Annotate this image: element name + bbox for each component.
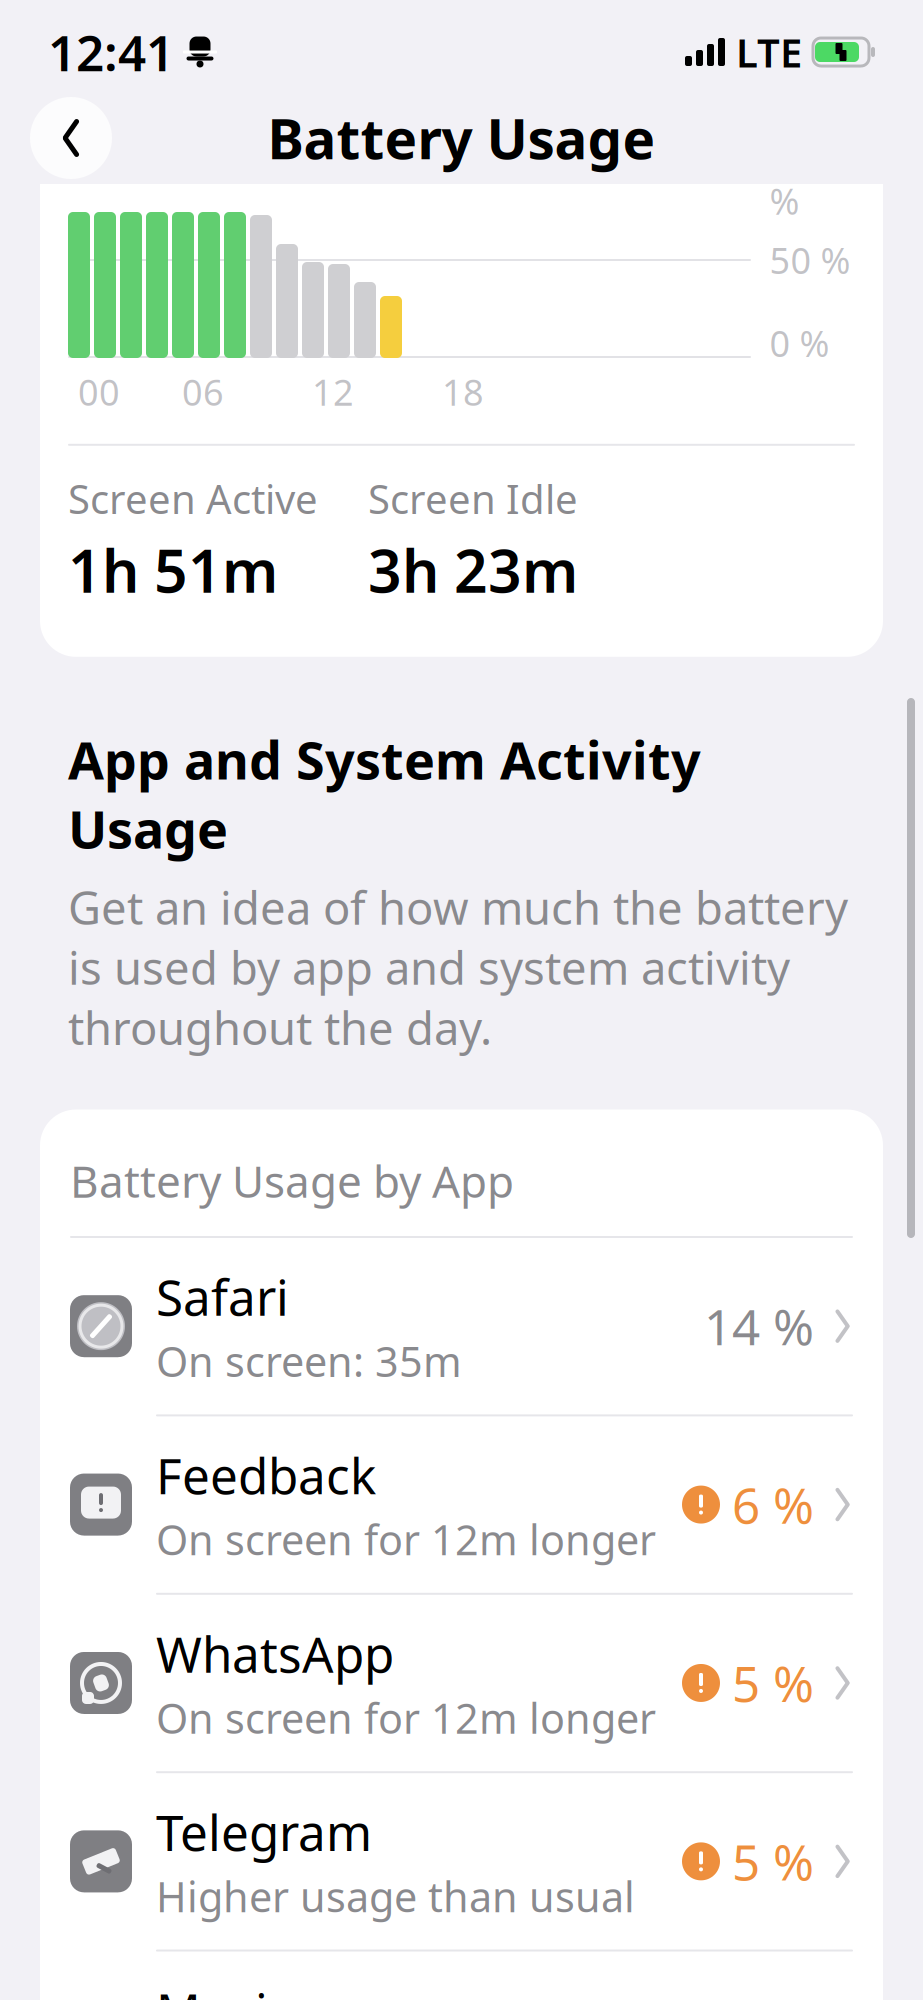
staticText: Get an idea of how much the battery is u… [68, 877, 848, 1057]
staticText: Safari [156, 1264, 289, 1329]
staticText: Feedback [156, 1442, 376, 1508]
staticText: 14 % [704, 1293, 814, 1359]
staticText: 5 % [732, 1829, 814, 1894]
staticText: Screen Active [68, 472, 318, 525]
staticText: 1h 51m [68, 531, 278, 609]
staticText: On screen for 12m longer [156, 1512, 656, 1567]
staticText: On screen for 12m longer [156, 1690, 656, 1745]
staticText: On screen: 35m [156, 1333, 462, 1388]
button[interactable]: Back [30, 97, 112, 179]
staticText: Telegram [156, 1799, 372, 1865]
staticText: 06 [182, 368, 224, 416]
staticText: App and System Activity Usage [68, 725, 701, 863]
staticText: Higher usage than usual [156, 1869, 635, 1924]
button[interactable]: Feedback [40, 1416, 883, 1593]
staticText: 12 [312, 368, 354, 416]
staticText: 12:41 [48, 19, 174, 85]
button[interactable]: WhatsApp [40, 1595, 883, 1771]
staticText: Screen Idle [368, 472, 578, 525]
staticText: 3h 23m [368, 531, 578, 609]
staticText: 6 % [732, 1472, 814, 1537]
staticText: WhatsApp [156, 1621, 394, 1686]
staticText: 18 [442, 368, 484, 416]
button[interactable]: Telegram [40, 1773, 883, 1950]
staticText: 100 % [769, 129, 832, 225]
staticText: 00 [78, 368, 120, 416]
button[interactable]: Safari [40, 1238, 883, 1414]
staticText: 50 % [769, 236, 850, 284]
staticText: LTE [736, 25, 802, 78]
staticText: 0 % [769, 319, 829, 367]
staticText: 5 % [732, 1650, 814, 1716]
button[interactable]: Music [40, 1952, 883, 2000]
staticText: Battery Usage by App [70, 1151, 514, 1210]
staticText: Music [156, 1978, 292, 2000]
staticText: Battery Usage [267, 102, 655, 174]
